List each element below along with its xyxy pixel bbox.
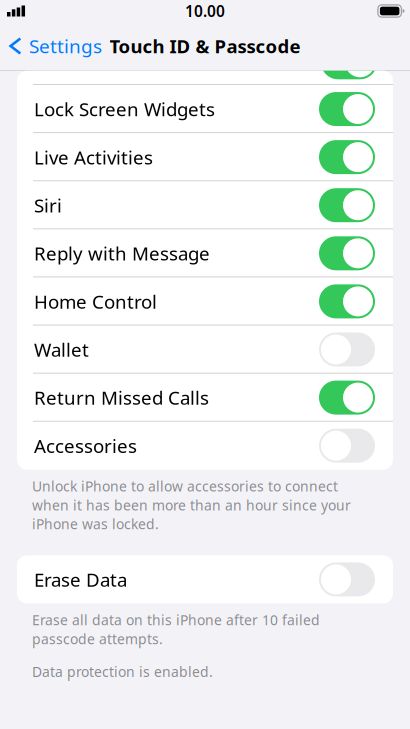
staticText: Return Missed Calls [34,385,209,410]
button[interactable]: Siri [17,181,393,229]
staticText: Data protection is enabled. [32,662,213,681]
button[interactable]: Lock Screen Widgets [17,85,393,133]
staticText: Accessories [34,433,137,458]
button[interactable]: Erase Data [17,555,393,603]
staticText: Home Control [34,289,157,314]
button[interactable] [17,71,393,85]
button[interactable]: Return Missed Calls [17,373,393,422]
button[interactable]: Home Control [17,277,393,325]
button[interactable]: Settings [0,25,102,67]
staticText: Reply with Message [34,241,210,266]
staticText: Live Activities [34,144,153,170]
staticText: Settings [29,33,102,59]
staticText: Erase all data on this iPhone after 10 f… [32,610,320,648]
staticText: 10.00 [185,0,225,22]
staticText: Touch ID & Passcode [109,33,300,59]
button[interactable]: Wallet [17,325,393,373]
staticText: Wallet [34,337,89,362]
button[interactable]: Live Activities [17,133,393,181]
staticText: Erase Data [34,567,127,592]
staticText: Lock Screen Widgets [34,96,215,122]
button[interactable]: Reply with Message [17,229,393,277]
staticText: Siri [34,192,62,218]
button[interactable]: Accessories [17,422,393,470]
staticText: Unlock iPhone to allow accessories to co… [32,477,351,533]
